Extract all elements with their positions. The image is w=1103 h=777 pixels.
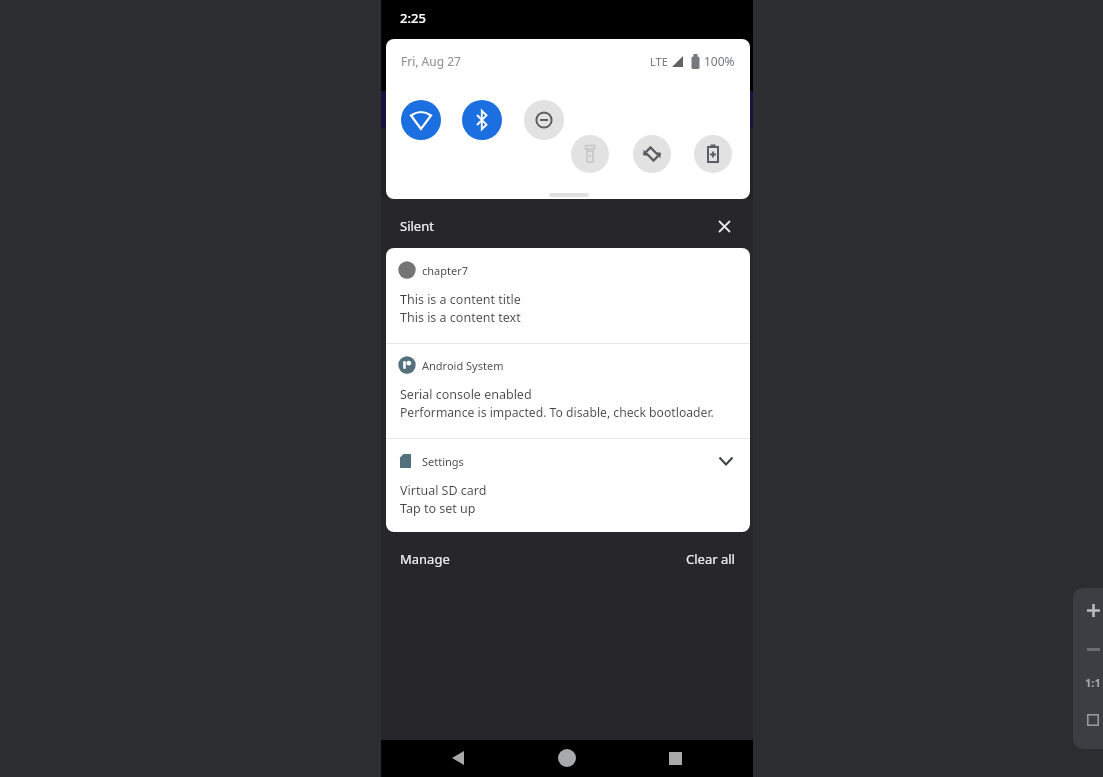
button[interactable] xyxy=(1077,633,1103,665)
button[interactable]: 1:1 xyxy=(1077,666,1103,698)
staticText: chapter7 xyxy=(422,263,469,278)
staticText: This is a content text xyxy=(400,309,521,326)
button[interactable] xyxy=(712,214,736,238)
button[interactable] xyxy=(714,449,738,473)
button[interactable] xyxy=(401,100,441,140)
button[interactable]: Manage xyxy=(389,545,499,573)
button[interactable] xyxy=(462,100,502,140)
staticText: Manage xyxy=(400,550,450,568)
staticText: Silent xyxy=(400,217,434,235)
staticText: Virtual SD card xyxy=(400,482,487,499)
staticText: 100% xyxy=(704,53,735,69)
staticText: This is a content title xyxy=(400,291,521,308)
button[interactable]: Android System xyxy=(386,343,750,438)
staticText: Fri, Aug 27 xyxy=(401,53,461,69)
button[interactable] xyxy=(524,100,564,140)
button[interactable]: chapter7 xyxy=(386,248,750,343)
staticText: Android System xyxy=(422,358,504,373)
button[interactable] xyxy=(633,135,671,173)
staticText: 1:1 xyxy=(1085,675,1101,690)
staticText: Tap to set up xyxy=(400,500,476,517)
staticText: 2:25 xyxy=(400,9,426,27)
button[interactable] xyxy=(1077,704,1103,736)
button[interactable] xyxy=(1077,594,1103,626)
button[interactable] xyxy=(438,739,478,777)
button[interactable] xyxy=(571,135,609,173)
button[interactable] xyxy=(655,739,695,777)
button[interactable]: Clear all xyxy=(631,545,741,573)
staticText: Clear all xyxy=(686,550,735,568)
staticText: Performance is impacted. To disable, che… xyxy=(400,404,714,421)
staticText: Serial console enabled xyxy=(400,386,532,403)
button[interactable]: Settings xyxy=(386,439,750,532)
staticText: Settings xyxy=(422,454,464,469)
button[interactable] xyxy=(694,135,732,173)
button[interactable] xyxy=(547,739,587,777)
staticText: LTE xyxy=(650,54,668,69)
